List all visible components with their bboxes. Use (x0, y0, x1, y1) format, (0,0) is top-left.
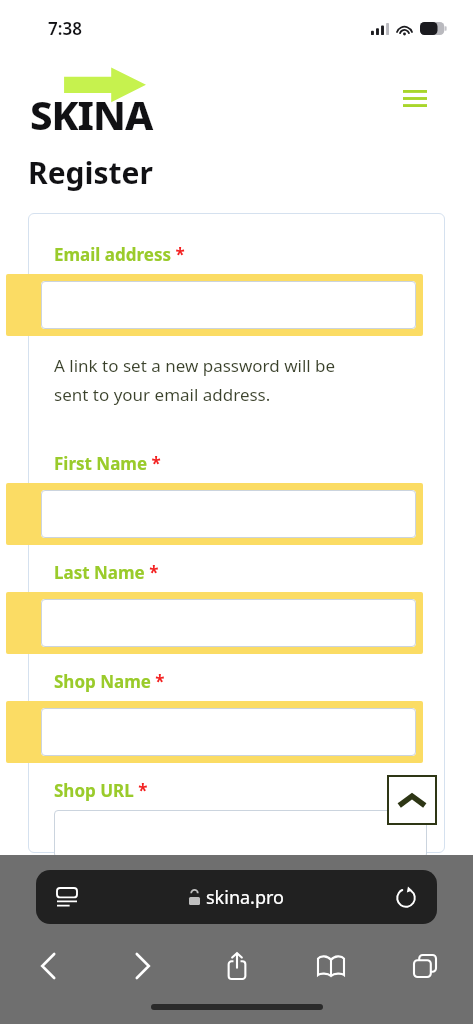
staticText: Last Name * (54, 561, 159, 584)
button[interactable] (6, 483, 423, 545)
button[interactable] (54, 810, 427, 858)
other: Reload (393, 884, 419, 910)
button[interactable]: Tabs (399, 940, 451, 992)
button[interactable] (6, 274, 423, 336)
button[interactable]: Bookmarks (305, 940, 357, 992)
button[interactable]: Forward (116, 940, 168, 992)
button[interactable] (6, 701, 423, 763)
staticText: Email address * (54, 243, 185, 266)
staticText: A link to set a new password will be sen… (54, 354, 336, 406)
staticText: Register (28, 152, 153, 193)
staticText: Shop URL * (54, 779, 148, 802)
staticText: Shop Name * (54, 670, 165, 693)
button[interactable]: Reader view (36, 870, 437, 924)
staticText: SKINA (30, 87, 153, 141)
other: Reader view (54, 884, 80, 910)
button[interactable]: Scroll to top (387, 775, 437, 825)
button[interactable]: Back (22, 940, 74, 992)
button[interactable]: Share (211, 940, 263, 992)
staticText: 7:38 (48, 17, 82, 40)
staticText: skina.pro (206, 885, 284, 910)
staticText: First Name * (54, 452, 161, 475)
button[interactable]: Menu (393, 76, 437, 120)
button[interactable] (6, 592, 423, 654)
